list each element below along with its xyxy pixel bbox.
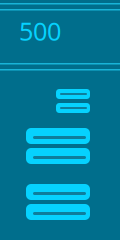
button[interactable]: Row [26,184,90,200]
staticText: 500 [19,14,61,48]
button[interactable]: Row [26,128,90,144]
button[interactable]: Row [56,103,90,113]
button[interactable]: Row [26,148,90,164]
button[interactable]: Row [56,89,90,99]
button[interactable]: Row [26,204,90,220]
